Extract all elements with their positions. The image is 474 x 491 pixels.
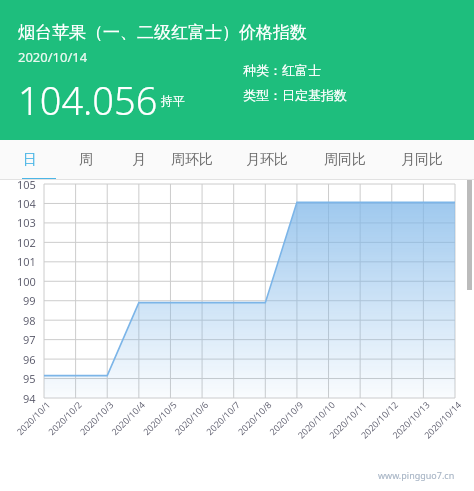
staticText: 类型：日定基指数 — [243, 87, 347, 103]
staticText: 月 — [132, 151, 146, 169]
staticText: 104.056 — [18, 74, 158, 126]
staticText: 月环比 — [246, 151, 288, 169]
button[interactable]: 周同比 — [321, 140, 369, 180]
staticText: 月同比 — [401, 151, 443, 169]
staticText: 持平 — [161, 93, 185, 108]
button[interactable]: 日 — [21, 140, 39, 180]
staticText: 种类：红富士 — [243, 62, 321, 78]
staticText: 周环比 — [171, 151, 213, 169]
staticText: 周 — [79, 151, 93, 169]
staticText: 周同比 — [324, 151, 366, 169]
button[interactable]: 月 — [130, 140, 148, 180]
button[interactable]: 月同比 — [398, 140, 446, 180]
button[interactable]: 周环比 — [168, 140, 216, 180]
button[interactable]: 周 — [77, 140, 95, 180]
staticText: 日 — [23, 151, 37, 169]
staticText: 2020/10/14 — [18, 48, 88, 66]
staticText: 烟台苹果（一、二级红富士）价格指数 — [18, 22, 307, 43]
button[interactable]: 月环比 — [243, 140, 291, 180]
